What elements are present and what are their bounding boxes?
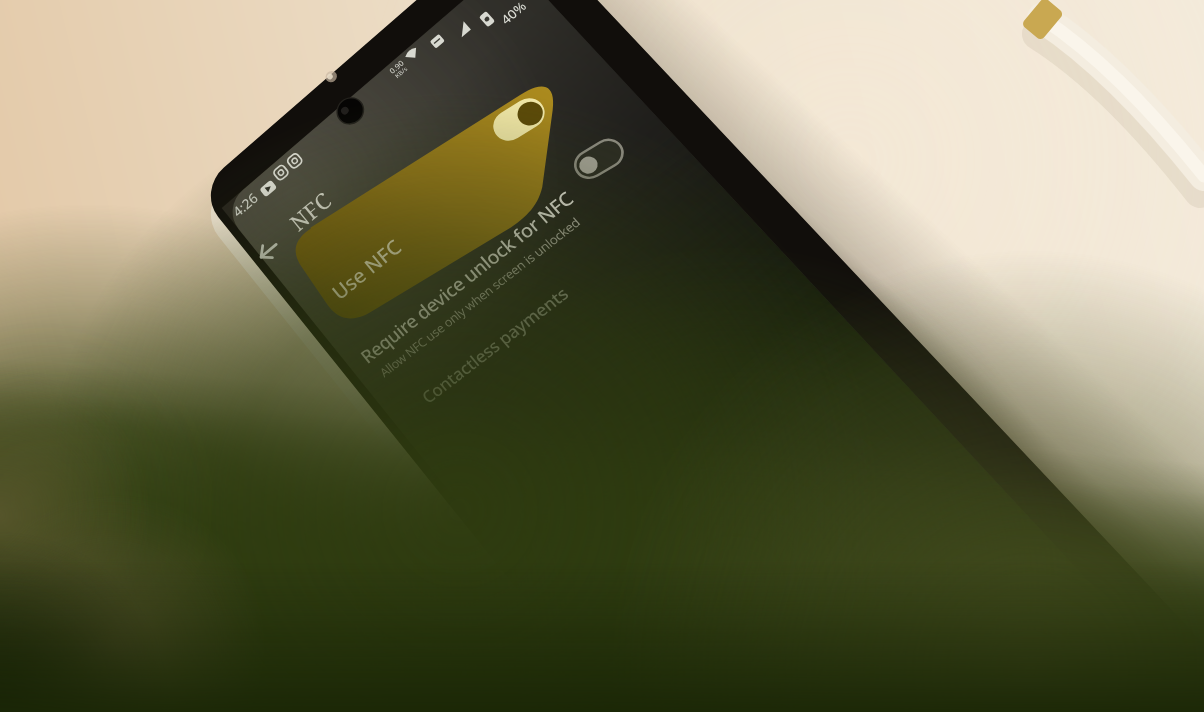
button[interactable] — [560, 125, 632, 191]
button[interactable] — [420, 310, 580, 390]
button[interactable] — [310, 80, 560, 310]
button[interactable] — [370, 190, 570, 350]
button[interactable] — [495, 75, 575, 145]
button[interactable] — [246, 229, 290, 273]
